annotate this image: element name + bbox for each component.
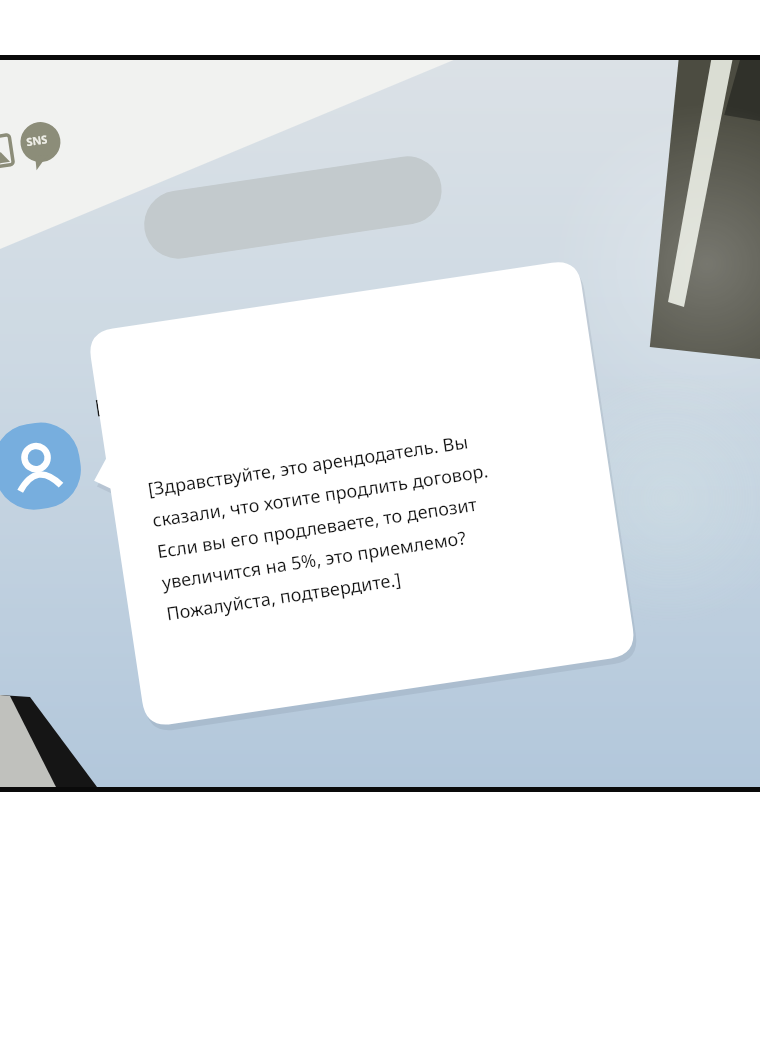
button[interactable]: Comic panel: chat message from landlord [0,0,760,1063]
